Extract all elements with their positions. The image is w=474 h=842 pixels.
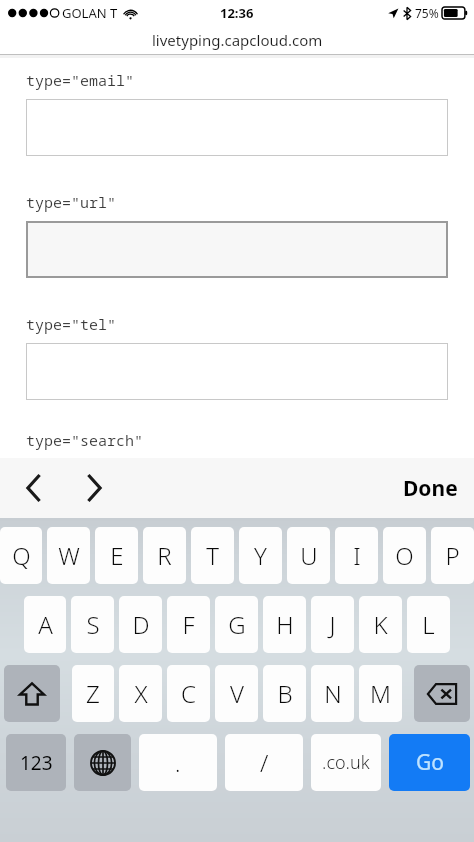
button[interactable]: .	[139, 734, 217, 791]
button[interactable]: R	[143, 527, 186, 584]
staticText: S	[86, 608, 100, 641]
staticText: R	[157, 539, 172, 572]
staticText: type="search"	[26, 430, 144, 450]
button[interactable]: Go	[389, 734, 470, 791]
button[interactable]: O	[383, 527, 426, 584]
button[interactable]: E	[95, 527, 138, 584]
button[interactable]: F	[167, 596, 210, 653]
staticText: .co.uk	[322, 750, 370, 775]
staticText: 75%	[415, 5, 439, 21]
button[interactable]: A	[24, 596, 66, 653]
staticText: C	[181, 677, 196, 710]
button[interactable]: P	[431, 527, 474, 584]
button[interactable]: D	[119, 596, 162, 653]
button[interactable]: N	[311, 665, 354, 722]
staticText: K	[373, 608, 388, 641]
button[interactable]: S	[71, 596, 114, 653]
button[interactable]: L	[407, 596, 450, 653]
button[interactable]: .co.uk	[311, 734, 381, 791]
button[interactable]: /	[225, 734, 303, 791]
button[interactable]	[26, 221, 448, 278]
staticText: livetyping.capcloud.com	[152, 30, 323, 50]
button[interactable]: Shift	[4, 665, 60, 722]
staticText: type="url"	[26, 192, 117, 212]
staticText: Go	[416, 748, 444, 777]
staticText: V	[230, 677, 244, 710]
button[interactable]: K	[359, 596, 402, 653]
staticText: I	[353, 539, 361, 572]
staticText: U	[300, 539, 318, 572]
button[interactable]: 123	[6, 734, 66, 791]
button[interactable]: Done	[397, 466, 464, 511]
button[interactable]: U	[287, 527, 330, 584]
button[interactable]: Z	[72, 665, 114, 722]
staticText: H	[276, 608, 294, 641]
button[interactable]: J	[311, 596, 354, 653]
staticText: M	[370, 677, 391, 710]
staticText: 123	[20, 750, 53, 776]
button[interactable]: V	[215, 665, 258, 722]
staticText: F	[182, 608, 195, 641]
staticText: D	[132, 608, 150, 641]
staticText: Z	[86, 677, 100, 710]
staticText: W	[58, 539, 80, 572]
button[interactable]: Y	[239, 527, 282, 584]
staticText: T	[206, 539, 219, 572]
button[interactable]: B	[263, 665, 306, 722]
button[interactable]: Backspace	[414, 665, 470, 722]
button[interactable]: G	[215, 596, 258, 653]
button[interactable]: C	[167, 665, 210, 722]
staticText: type="email"	[26, 70, 135, 90]
staticText: GOLAN T	[62, 4, 118, 22]
staticText: G	[228, 608, 246, 641]
staticText: N	[324, 677, 342, 710]
staticText: type="tel"	[26, 314, 117, 334]
staticText: E	[110, 539, 124, 572]
button[interactable]	[26, 343, 448, 400]
button[interactable]: Switch keyboard	[74, 734, 131, 791]
staticText: 12:36	[220, 4, 254, 22]
staticText: X	[134, 677, 148, 710]
staticText: L	[422, 608, 435, 641]
button[interactable]	[26, 99, 448, 156]
staticText: Y	[254, 539, 267, 572]
staticText: Q	[12, 539, 31, 572]
staticText: A	[38, 608, 53, 641]
button[interactable]: X	[119, 665, 162, 722]
button[interactable]: Next field	[72, 466, 116, 510]
staticText: J	[329, 608, 336, 641]
button[interactable]: Q	[0, 527, 42, 584]
staticText: P	[445, 539, 460, 572]
button[interactable]: Previous field	[12, 466, 56, 510]
staticText: .	[175, 748, 181, 778]
button[interactable]: H	[263, 596, 306, 653]
staticText: B	[277, 677, 293, 710]
button[interactable]: I	[335, 527, 378, 584]
button[interactable]: W	[47, 527, 90, 584]
staticText: Done	[403, 474, 458, 503]
staticText: /	[260, 746, 269, 779]
button[interactable]: M	[359, 665, 402, 722]
staticText: O	[395, 539, 414, 572]
button[interactable]: T	[191, 527, 234, 584]
